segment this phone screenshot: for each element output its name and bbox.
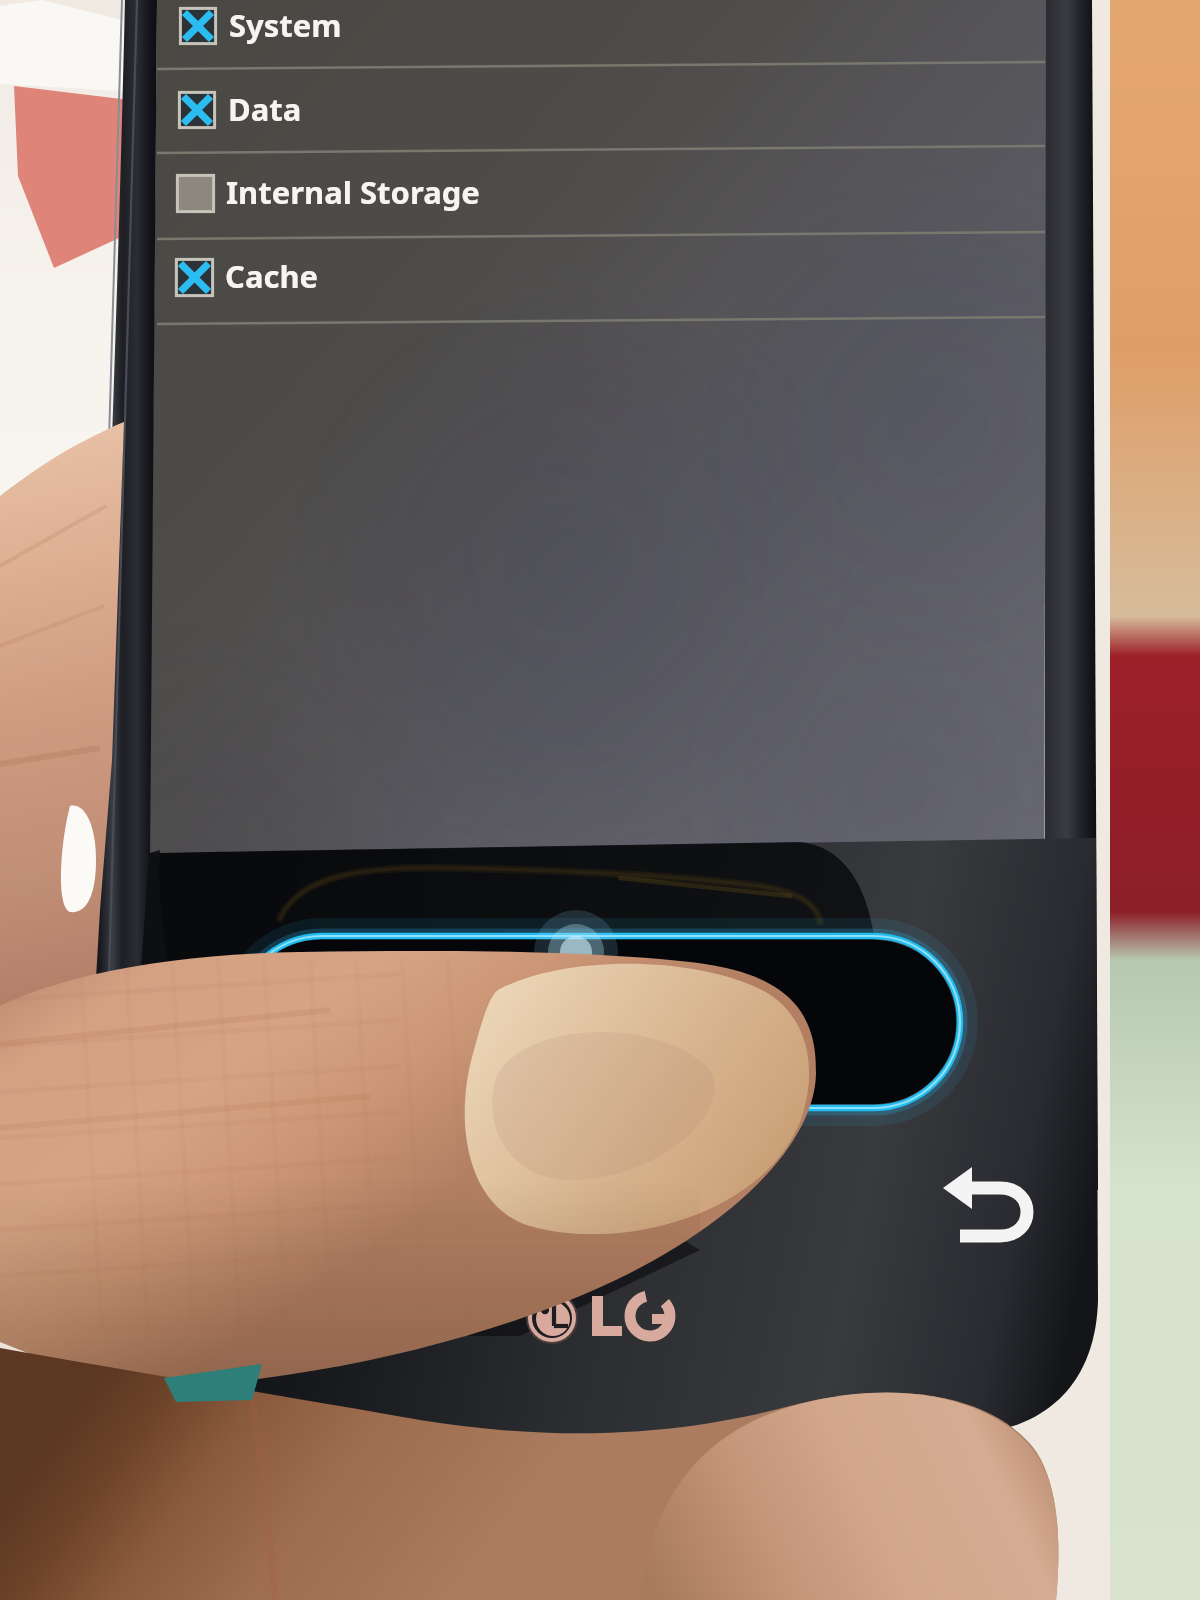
- button[interactable]: Rear key: [238, 938, 964, 1110]
- staticText: Data: [228, 88, 302, 130]
- button[interactable]: [157, 67, 1045, 150]
- button[interactable]: [157, 0, 1045, 66]
- staticText: Internal Storage: [226, 171, 480, 213]
- button[interactable]: [157, 153, 1045, 236]
- button[interactable]: Back: [930, 1150, 1054, 1274]
- staticText: Cache: [225, 255, 319, 297]
- button[interactable]: [157, 238, 1045, 321]
- staticText: System: [229, 4, 342, 46]
